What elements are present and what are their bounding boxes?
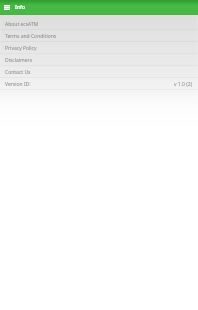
staticText: v 1.0 (2) <box>174 81 193 88</box>
button[interactable]: Terms and Conditions <box>0 30 198 42</box>
staticText: Version ID: <box>5 81 31 88</box>
button[interactable]: Contact Us <box>0 66 198 78</box>
staticText: About ecsATM <box>5 21 39 28</box>
staticText: Disclaimers <box>5 57 33 64</box>
button[interactable]: About ecsATM <box>0 18 198 30</box>
button[interactable]: Disclaimers <box>0 54 198 66</box>
button[interactable]: Version ID: <box>0 78 198 90</box>
staticText: Terms and Conditions <box>5 33 57 40</box>
button[interactable]: Open navigation drawer <box>2 2 12 13</box>
staticText: Privacy Policy <box>5 45 37 52</box>
button[interactable]: Privacy Policy <box>0 42 198 54</box>
staticText: Contact Us <box>5 69 31 76</box>
staticText: Info <box>15 4 25 11</box>
